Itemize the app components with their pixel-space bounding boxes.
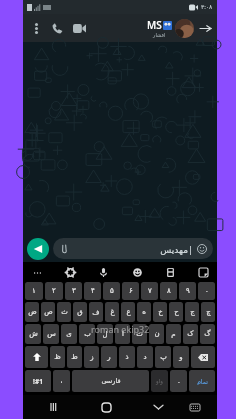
button[interactable]: واو [151,370,168,392]
staticText: ن [154,330,160,338]
staticText: چ [206,308,211,316]
button[interactable]: ۲ [45,282,63,300]
button[interactable]: و [173,346,189,368]
staticText: م [171,330,176,338]
staticText: ج [190,308,195,316]
staticText: پ [160,353,167,361]
staticText: ، [60,377,63,385]
staticText: ۰ [205,287,209,295]
button[interactable]: ف [89,302,103,322]
button[interactable]: ح [169,302,183,322]
button[interactable]: ا [115,324,130,344]
button[interactable]: Shift [25,346,48,368]
button[interactable]: !#1 [25,370,51,392]
staticText: ۲ [52,287,56,295]
button[interactable]: ، [53,370,70,392]
button[interactable]: ت [132,324,147,344]
button[interactable]: ق [73,302,87,322]
button[interactable]: غ [105,302,119,322]
staticText: مهدیس| [160,243,193,255]
button[interactable]: ش [25,324,41,344]
staticText: roman ekip32 [91,323,150,335]
button[interactable]: ۳ [65,282,82,300]
button[interactable]: Emoji [196,243,208,255]
staticText: ث [61,308,68,316]
button[interactable]: Video call [69,18,89,38]
button[interactable]: ک [183,324,198,344]
button[interactable]: ظ [50,346,65,368]
button[interactable]: ۶ [122,282,139,300]
button[interactable]: Home [96,397,116,417]
button[interactable]: Recents [44,397,64,417]
button[interactable]: تمام [189,370,215,392]
button[interactable]: گ [200,324,215,344]
staticText: واو [156,378,163,384]
button[interactable]: ۷ [141,282,158,300]
button[interactable]: gear [62,264,78,280]
staticText: ح [174,308,179,316]
button[interactable]: dots [29,264,45,280]
staticText: و [179,353,183,361]
button[interactable]: خ [153,302,167,322]
staticText: افشار [153,32,166,38]
button[interactable]: د [137,346,153,368]
button[interactable]: م [166,324,181,344]
button[interactable]: ۵ [103,282,120,300]
button[interactable]: ۰ [198,282,215,300]
staticText: ب [84,330,91,338]
staticText: ا [122,330,124,338]
button[interactable]: ذ [119,346,135,368]
staticText: گ [204,330,211,338]
button[interactable]: ۴ [84,282,101,300]
button[interactable]: ض [25,302,39,322]
button[interactable]: پ [155,346,171,368]
staticText: ک [187,330,194,338]
button[interactable]: More options [27,19,45,37]
button[interactable]: ۸ [160,282,177,300]
staticText: ی [66,330,72,338]
button[interactable]: چ [201,302,215,322]
button[interactable]: ر [101,346,117,368]
button[interactable]: . [170,370,187,392]
button[interactable]: emoji [129,264,145,280]
staticText: ۷ [148,287,152,295]
staticText: ط [71,353,78,361]
button[interactable]: sticker [195,264,211,280]
staticText: ۱ [32,287,36,295]
button[interactable]: مهدیس| [53,238,213,259]
button[interactable]: Send [27,238,49,260]
button[interactable]: ث [57,302,71,322]
button[interactable]: Backspace [191,346,215,368]
button[interactable]: Hide keyboard [148,397,168,417]
staticText: ۴ [91,287,95,295]
button[interactable]: Switch keyboard [185,397,205,417]
button[interactable]: Back [195,18,215,38]
button[interactable]: س [43,324,59,344]
staticText: ۶ [129,287,133,295]
button[interactable]: ب [79,324,95,344]
button[interactable]: ی [61,324,77,344]
button[interactable]: ۹ [179,282,196,300]
button[interactable]: MS [147,18,194,38]
button[interactable]: ۱ [25,282,43,300]
button[interactable]: ز [84,346,99,368]
staticText: تمام [197,378,208,385]
staticText: ظ [54,353,61,361]
button[interactable]: فارسی [72,370,149,392]
staticText: ل [102,330,108,338]
staticText: ق [77,308,83,316]
button[interactable]: ل [97,324,113,344]
button[interactable]: ص [41,302,55,322]
button[interactable]: ع [121,302,135,322]
button[interactable]: ط [67,346,82,368]
button[interactable]: Voice call [47,18,67,38]
button[interactable]: ه [137,302,151,322]
staticText: MS [147,18,162,32]
staticText: د [143,353,147,361]
staticText: ر [107,353,111,361]
button[interactable]: ج [185,302,199,322]
button[interactable]: clip [162,264,178,280]
button[interactable]: mic [95,264,111,280]
button[interactable]: ن [149,324,164,344]
staticText: غ [110,308,115,316]
